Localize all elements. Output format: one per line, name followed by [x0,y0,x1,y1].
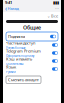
staticText: ⌄ Все [47,13,58,19]
button[interactable]: Кэш и память [3,57,61,65]
staticText: Сменить аккаунт [8,77,39,82]
staticText: Telegram Premium [6,48,41,54]
button[interactable]: Частный доступ [3,41,61,49]
staticText: ‹ [5,4,7,13]
button[interactable]: ‹ [5,4,18,13]
button[interactable]: Telegram Premium [3,49,61,57]
staticText: ⋯ [55,6,59,11]
button[interactable]: More [55,6,59,11]
staticText: Общие [23,24,41,31]
staticText: Оформить подписку [6,54,34,58]
staticText: Назад [7,6,18,11]
staticText: Язык [6,64,16,70]
button[interactable]: Язык [3,65,61,73]
staticText: ▮▮▮ [53,0,59,5]
staticText: Очистить кэш [6,62,23,66]
staticText: Русский [6,70,16,74]
staticText: Узнать больше [6,46,25,50]
button[interactable]: Сменить аккаунт [6,76,41,83]
staticText: 9:41 [5,0,12,5]
staticText: Подписка [8,34,25,39]
staticText: Кэш и память [6,56,32,62]
staticText: Частный доступ [6,40,35,46]
